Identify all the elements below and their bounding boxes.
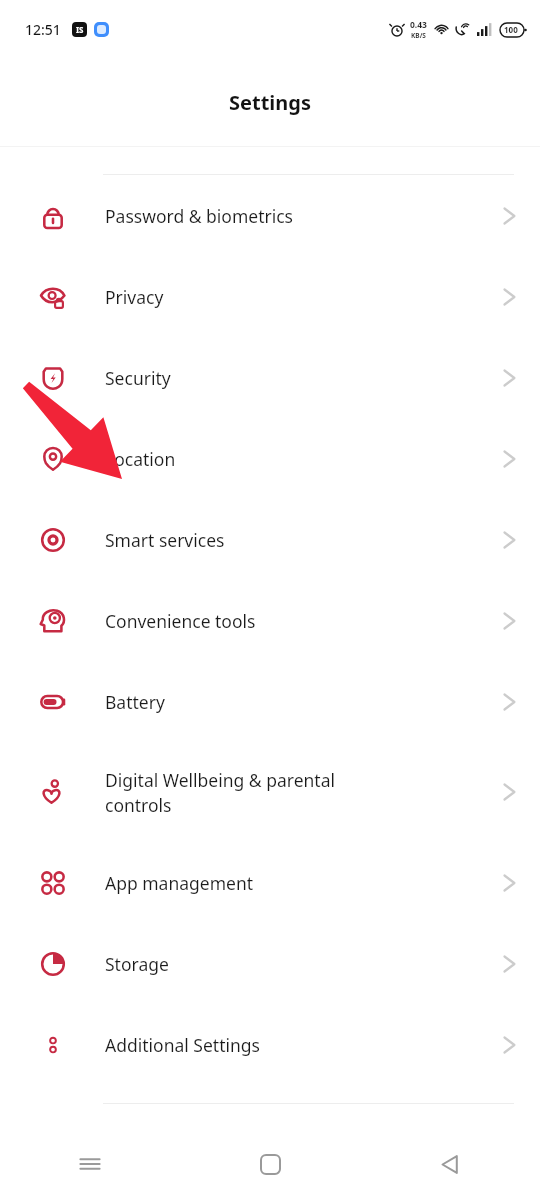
staticText: Digital Wellbeing & parental controls <box>105 768 336 817</box>
staticText: Location <box>105 447 176 471</box>
button[interactable]: Battery <box>0 661 540 742</box>
staticText: 0.43 <box>410 19 427 31</box>
staticText: Privacy <box>105 285 164 309</box>
button[interactable]: Back <box>360 1128 540 1200</box>
button[interactable]: Digital Wellbeing & parental controls <box>0 742 540 842</box>
button[interactable]: Recent apps <box>0 1128 180 1200</box>
staticText: Battery <box>105 690 165 714</box>
staticText: KB/S <box>411 31 426 40</box>
button[interactable]: Security <box>0 337 540 418</box>
button[interactable]: Smart services <box>0 499 540 580</box>
button[interactable]: Location <box>0 418 540 499</box>
staticText: Settings <box>229 89 311 116</box>
staticText: 100 <box>504 24 518 35</box>
staticText: Storage <box>105 952 169 976</box>
staticText: Password & biometrics <box>105 204 294 228</box>
button[interactable]: App management <box>0 842 540 923</box>
staticText: Additional Settings <box>105 1033 260 1057</box>
button[interactable]: Password & biometrics <box>0 175 540 256</box>
staticText: Smart services <box>105 528 225 552</box>
staticText: App management <box>105 871 254 895</box>
staticText: Security <box>105 366 171 390</box>
button[interactable]: Storage <box>0 923 540 1004</box>
button[interactable]: Additional Settings <box>0 1004 540 1085</box>
button[interactable]: Home <box>180 1128 360 1200</box>
button[interactable]: Convenience tools <box>0 580 540 661</box>
staticText: Convenience tools <box>105 609 256 633</box>
staticText: IS <box>76 24 84 35</box>
button[interactable]: Privacy <box>0 256 540 337</box>
staticText: 12:51 <box>25 20 61 39</box>
